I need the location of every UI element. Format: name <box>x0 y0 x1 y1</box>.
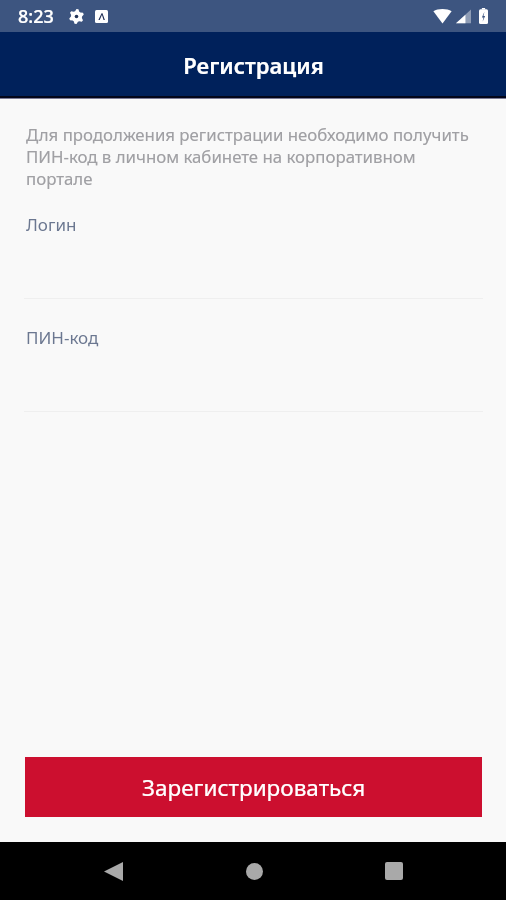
button[interactable]: ПИН-код <box>0 326 506 412</box>
button[interactable]: Home <box>219 842 289 900</box>
staticText: Логин <box>26 213 77 236</box>
staticText: ПИН-код <box>26 326 99 349</box>
button[interactable]: Back <box>78 842 148 900</box>
button[interactable]: Зарегистрироваться <box>25 757 482 817</box>
button[interactable]: Логин <box>0 213 506 299</box>
staticText: Регистрация <box>183 50 324 80</box>
staticText: Зарегистрироваться <box>142 772 366 803</box>
staticText: Для продолжения регистрации необходимо п… <box>26 123 481 190</box>
staticText: 8:23 <box>18 4 54 29</box>
button[interactable]: Recent apps <box>359 842 429 900</box>
